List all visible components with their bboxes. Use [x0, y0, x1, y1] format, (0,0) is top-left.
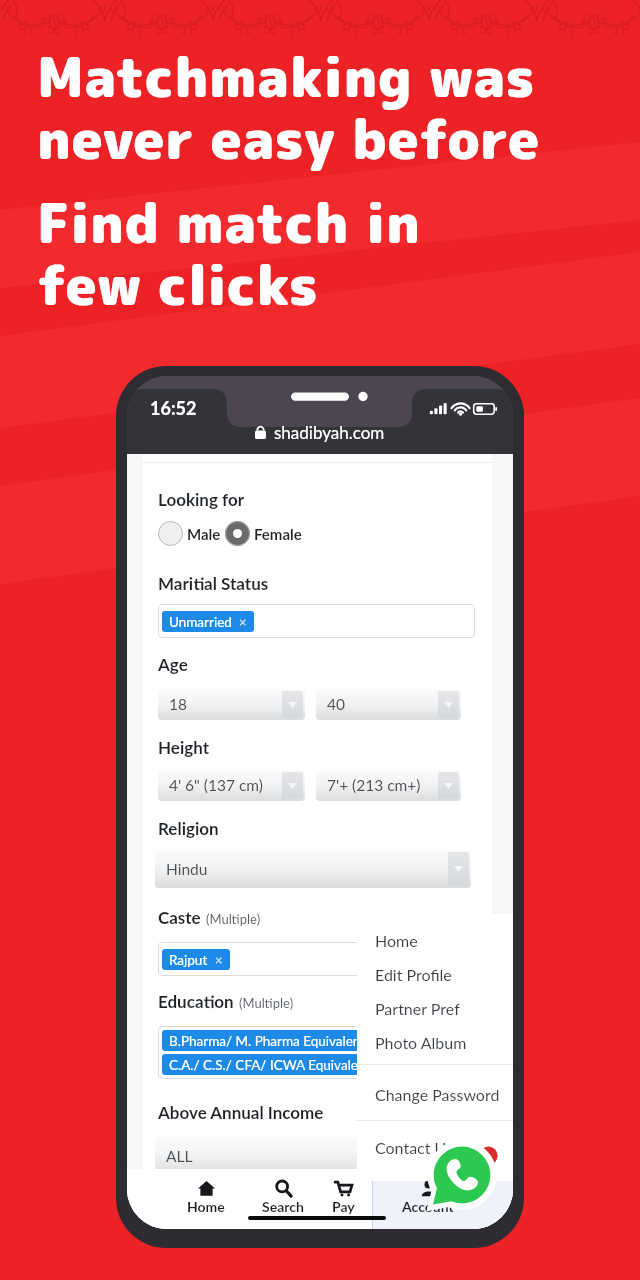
button[interactable]: Rajput: [162, 942, 471, 976]
staticText: Rajput: [169, 952, 208, 968]
button[interactable]: C.A./ C.S./ CFA/ ICWA Equivalent: [169, 1054, 386, 1075]
button[interactable]: Hindu: [155, 850, 471, 888]
button[interactable]: Home: [357, 923, 513, 957]
button[interactable]: Photo Album: [357, 1025, 513, 1059]
staticText: ×: [378, 1057, 386, 1073]
button[interactable]: Rajput: [169, 949, 223, 970]
staticText: ×: [215, 952, 223, 968]
staticText: Photo Album: [375, 1033, 467, 1052]
button[interactable]: 40: [316, 689, 461, 720]
button[interactable]: Unmarried: [169, 611, 247, 632]
staticText: Home: [187, 1198, 225, 1215]
staticText: Unmarried: [169, 614, 232, 630]
staticText: Edit Profile: [375, 965, 452, 984]
staticText: 16:52: [150, 397, 197, 419]
staticText: Male: [187, 525, 221, 543]
staticText: Female: [254, 525, 302, 543]
staticText: Home: [375, 931, 418, 950]
button[interactable]: ALL: [155, 1137, 471, 1175]
staticText: Partner Pref: [375, 999, 460, 1018]
staticText: (Multiple): [206, 911, 261, 927]
staticText: B.Pharma/ M. Pharma Equivalent: [169, 1033, 366, 1049]
staticText: Search: [262, 1198, 304, 1215]
staticText: C.A./ C.S./ CFA/ ICWA Equivalent: [169, 1057, 371, 1073]
staticText: Change Password: [375, 1085, 500, 1104]
staticText: Height: [158, 737, 210, 757]
staticText: ×: [373, 1033, 381, 1049]
staticText: Looking for: [158, 489, 244, 509]
button[interactable]: Search: [249, 1169, 317, 1213]
staticText: 4' 6" (137 cm): [169, 776, 263, 795]
button[interactable]: [225, 521, 250, 546]
staticText: Matchmaking was never easy before: [37, 39, 540, 176]
button[interactable]: Change Password: [357, 1077, 513, 1111]
staticText: 18: [169, 695, 187, 714]
staticText: Account: [402, 1198, 454, 1215]
button[interactable]: [158, 521, 183, 546]
button[interactable]: Account: [394, 1169, 462, 1213]
staticText: Maritial Status: [158, 573, 269, 593]
staticText: 7'+ (213 cm+): [327, 776, 421, 795]
staticText: Religion: [158, 818, 219, 838]
staticText: shadibyah.com: [274, 422, 385, 442]
button[interactable]: B.Pharma/ M. Pharma Equivalent: [169, 1030, 381, 1051]
button[interactable]: 18: [158, 689, 305, 720]
staticText: ×: [239, 614, 247, 630]
button[interactable]: Chat on WhatsApp: [422, 1135, 502, 1215]
staticText: Education: [158, 991, 234, 1011]
button[interactable]: Unmarried: [162, 604, 471, 638]
staticText: (Multiple): [239, 995, 294, 1011]
button[interactable]: Home: [172, 1169, 240, 1213]
staticText: 40: [327, 695, 345, 714]
staticText: Caste: [158, 907, 201, 927]
staticText: Above Annual Income: [158, 1102, 324, 1122]
staticText: Find match in few clicks: [37, 185, 421, 322]
button[interactable]: Contact Us: [357, 1130, 513, 1164]
staticText: ALL: [166, 1147, 193, 1166]
staticText: Age: [158, 654, 188, 674]
button[interactable]: Pay: [309, 1169, 377, 1213]
button[interactable]: 4' 6" (137 cm): [158, 770, 305, 801]
button[interactable]: Partner Pref: [357, 991, 513, 1025]
staticText: Contact Us: [375, 1138, 453, 1157]
button[interactable]: Edit Profile: [357, 957, 513, 991]
staticText: Pay: [332, 1198, 355, 1215]
staticText: Hindu: [166, 860, 208, 879]
button[interactable]: 7'+ (213 cm+): [316, 770, 461, 801]
